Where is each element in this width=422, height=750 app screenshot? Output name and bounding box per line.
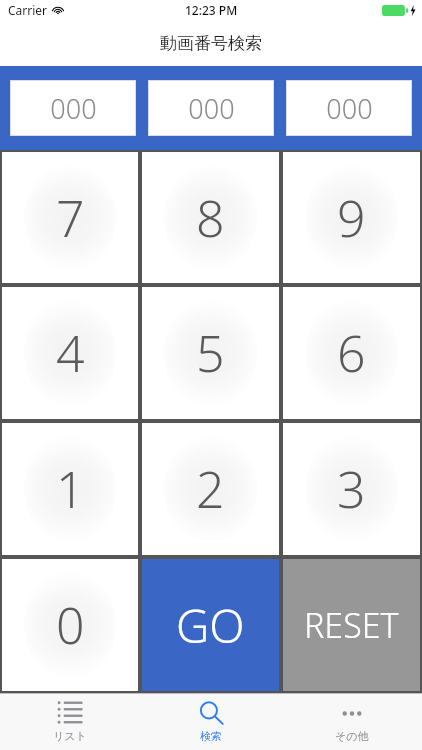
- button[interactable]: GO: [140, 557, 281, 693]
- button[interactable]: 7: [0, 150, 140, 285]
- button[interactable]: 0: [0, 557, 140, 693]
- button[interactable]: リスト: [0, 694, 140, 750]
- button[interactable]: 3: [281, 421, 422, 557]
- staticText: 1: [56, 455, 85, 523]
- staticText: 0: [56, 591, 85, 659]
- button[interactable]: その他: [281, 694, 422, 750]
- staticText: Carrier: [8, 2, 48, 18]
- staticText: 9: [337, 184, 366, 252]
- staticText: 6: [337, 319, 366, 387]
- button[interactable]: 000: [10, 80, 136, 136]
- staticText: その他: [335, 729, 369, 743]
- button[interactable]: 000: [148, 80, 274, 136]
- button[interactable]: 9: [281, 150, 422, 285]
- button[interactable]: 4: [0, 285, 140, 421]
- staticText: 3: [337, 455, 366, 523]
- staticText: RESET: [304, 602, 399, 648]
- button[interactable]: 検索: [140, 694, 281, 750]
- staticText: 8: [196, 184, 225, 252]
- button[interactable]: 1: [0, 421, 140, 557]
- button[interactable]: 000: [286, 80, 412, 136]
- staticText: 000: [326, 90, 373, 127]
- staticText: 4: [56, 319, 85, 387]
- button[interactable]: RESET: [281, 557, 422, 693]
- staticText: 2: [196, 455, 225, 523]
- staticText: リスト: [53, 729, 87, 743]
- staticText: 12:23 PM: [185, 2, 238, 18]
- staticText: 動画番号検索: [160, 33, 262, 54]
- button[interactable]: 2: [140, 421, 281, 557]
- staticText: 7: [56, 184, 85, 252]
- button[interactable]: 5: [140, 285, 281, 421]
- staticText: GO: [176, 594, 245, 657]
- staticText: 000: [188, 90, 235, 127]
- staticText: 000: [50, 90, 97, 127]
- button[interactable]: 6: [281, 285, 422, 421]
- staticText: 検索: [200, 729, 222, 743]
- button[interactable]: 8: [140, 150, 281, 285]
- staticText: 5: [196, 319, 225, 387]
